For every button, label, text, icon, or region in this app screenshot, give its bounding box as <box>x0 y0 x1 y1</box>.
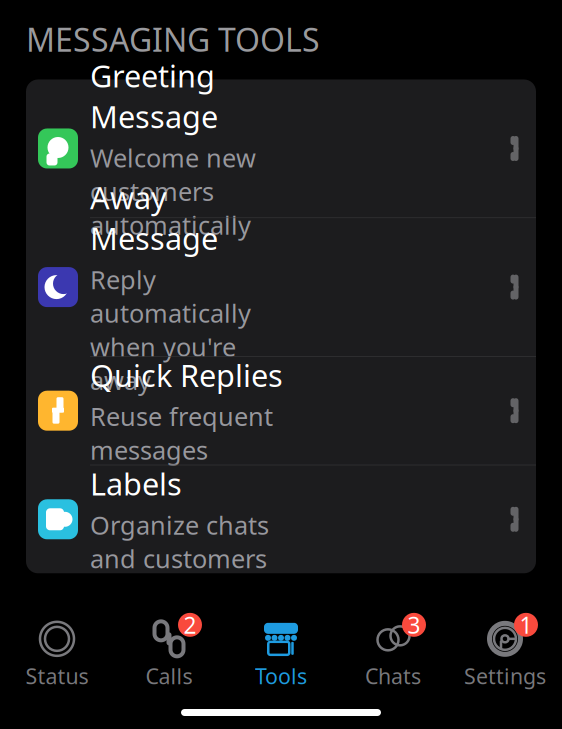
staticText: Tools <box>255 662 307 690</box>
staticText: 2 <box>183 610 196 640</box>
staticText: Welcome new customers automatically <box>90 141 256 242</box>
button[interactable]: Tools <box>225 623 337 687</box>
button[interactable]: 1 <box>449 623 561 687</box>
staticText: Labels <box>90 463 182 504</box>
staticText: Greeting Message <box>90 55 218 137</box>
button[interactable]: Status <box>1 623 113 687</box>
button[interactable]: Greeting Message <box>26 79 536 217</box>
staticText: Reuse frequent messages <box>90 399 273 467</box>
staticText: Settings <box>464 662 546 690</box>
button[interactable]: Labels <box>26 465 536 573</box>
staticText: Status <box>25 662 88 690</box>
button[interactable]: Quick Replies <box>26 357 536 465</box>
staticText: MESSAGING TOOLS <box>26 18 320 60</box>
staticText: Organize chats and customers <box>90 508 269 575</box>
button[interactable]: Away Message <box>26 218 536 356</box>
staticText: 1 <box>519 610 532 640</box>
staticText: Reply automatically when you're away <box>90 262 251 397</box>
button[interactable]: 2 <box>113 623 225 687</box>
staticText: Chats <box>365 662 421 690</box>
staticText: Quick Replies <box>90 355 283 395</box>
staticText: 3 <box>407 610 420 640</box>
staticText: Away Message <box>90 177 218 258</box>
staticText: Calls <box>145 662 192 690</box>
button[interactable]: 3 <box>337 623 449 687</box>
